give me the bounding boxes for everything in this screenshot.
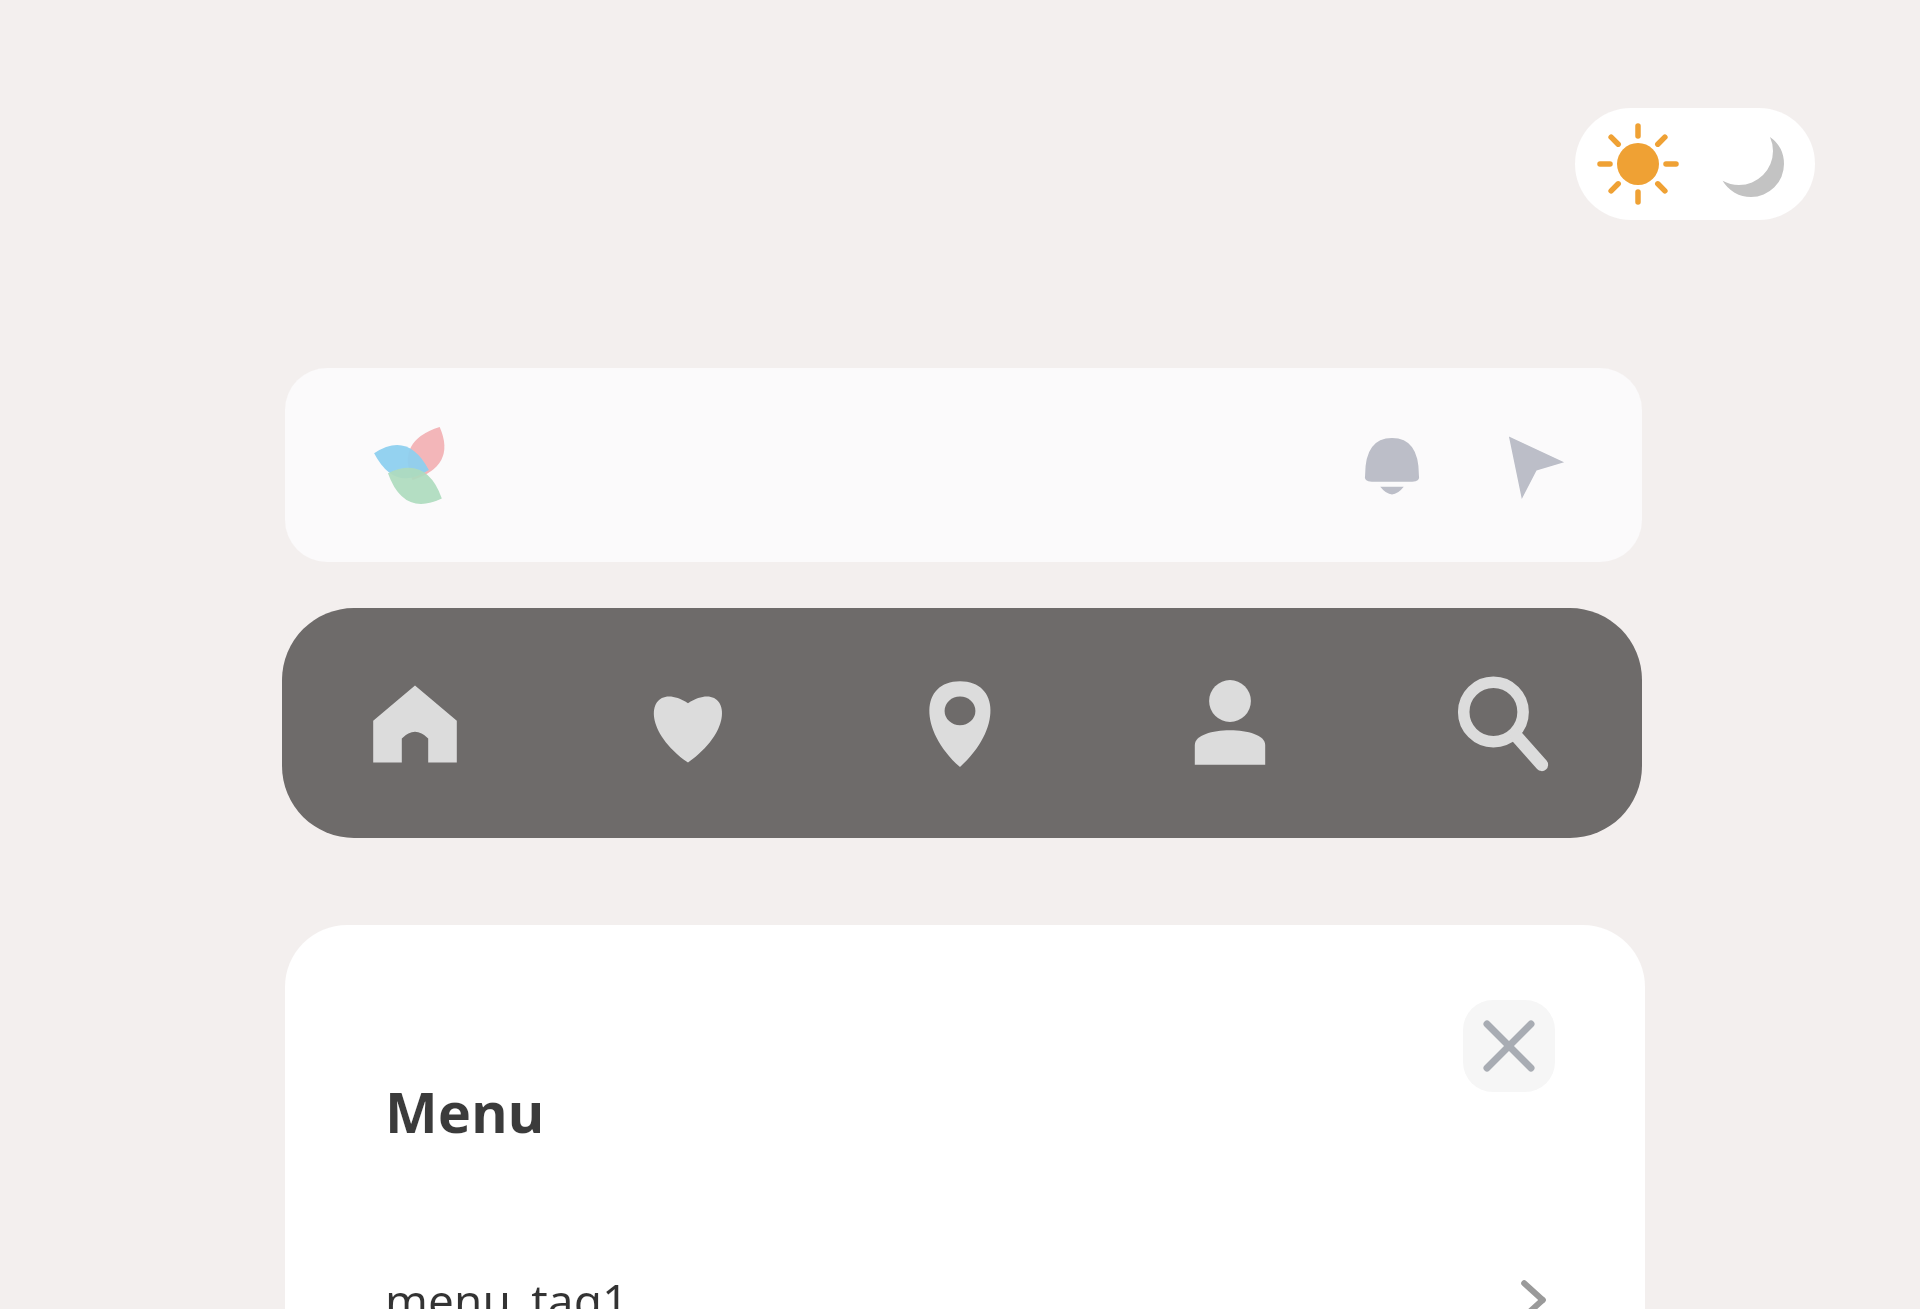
button[interactable]: App logo bbox=[357, 408, 467, 518]
staticText: menu_tag1 bbox=[385, 1269, 629, 1309]
button[interactable]: Notifications bbox=[1350, 423, 1434, 507]
button[interactable]: Location bbox=[905, 668, 1015, 778]
button[interactable]: Favorites bbox=[633, 668, 743, 778]
button[interactable]: Close bbox=[1463, 1000, 1555, 1092]
staticText: Menu bbox=[385, 1073, 545, 1149]
button[interactable]: Pointer bbox=[1485, 420, 1577, 512]
button[interactable]: Profile bbox=[1175, 668, 1285, 778]
button[interactable]: Toggle light and dark theme bbox=[1575, 108, 1815, 220]
button[interactable]: Search bbox=[1445, 668, 1555, 778]
button[interactable]: menu_tag1 bbox=[285, 1255, 1645, 1309]
button[interactable]: Home bbox=[360, 668, 470, 778]
